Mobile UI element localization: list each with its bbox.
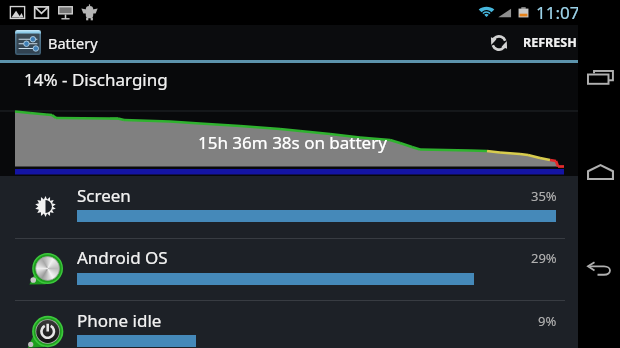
staticText: Phone idle bbox=[77, 309, 162, 332]
button[interactable]: Back bbox=[578, 246, 620, 294]
staticText: Screen bbox=[77, 184, 131, 207]
staticText: Battery bbox=[48, 33, 98, 53]
staticText: 15h 36m 38s on battery bbox=[198, 131, 387, 154]
staticText: 35% bbox=[531, 187, 557, 205]
button[interactable]: REFRESH bbox=[480, 25, 583, 60]
staticText: REFRESH bbox=[523, 34, 577, 51]
button[interactable]: Battery bbox=[0, 25, 110, 60]
staticText: 29% bbox=[531, 249, 557, 267]
staticText: Android OS bbox=[77, 246, 168, 269]
staticText: 11:07 bbox=[536, 1, 580, 24]
staticText: 9% bbox=[538, 312, 557, 330]
button[interactable]: Recent apps bbox=[578, 53, 620, 101]
button[interactable] bbox=[0, 240, 578, 300]
button[interactable]: Home bbox=[578, 148, 620, 196]
staticText: 14% - Discharging bbox=[24, 68, 168, 91]
button[interactable] bbox=[0, 177, 578, 237]
button[interactable] bbox=[0, 302, 578, 348]
